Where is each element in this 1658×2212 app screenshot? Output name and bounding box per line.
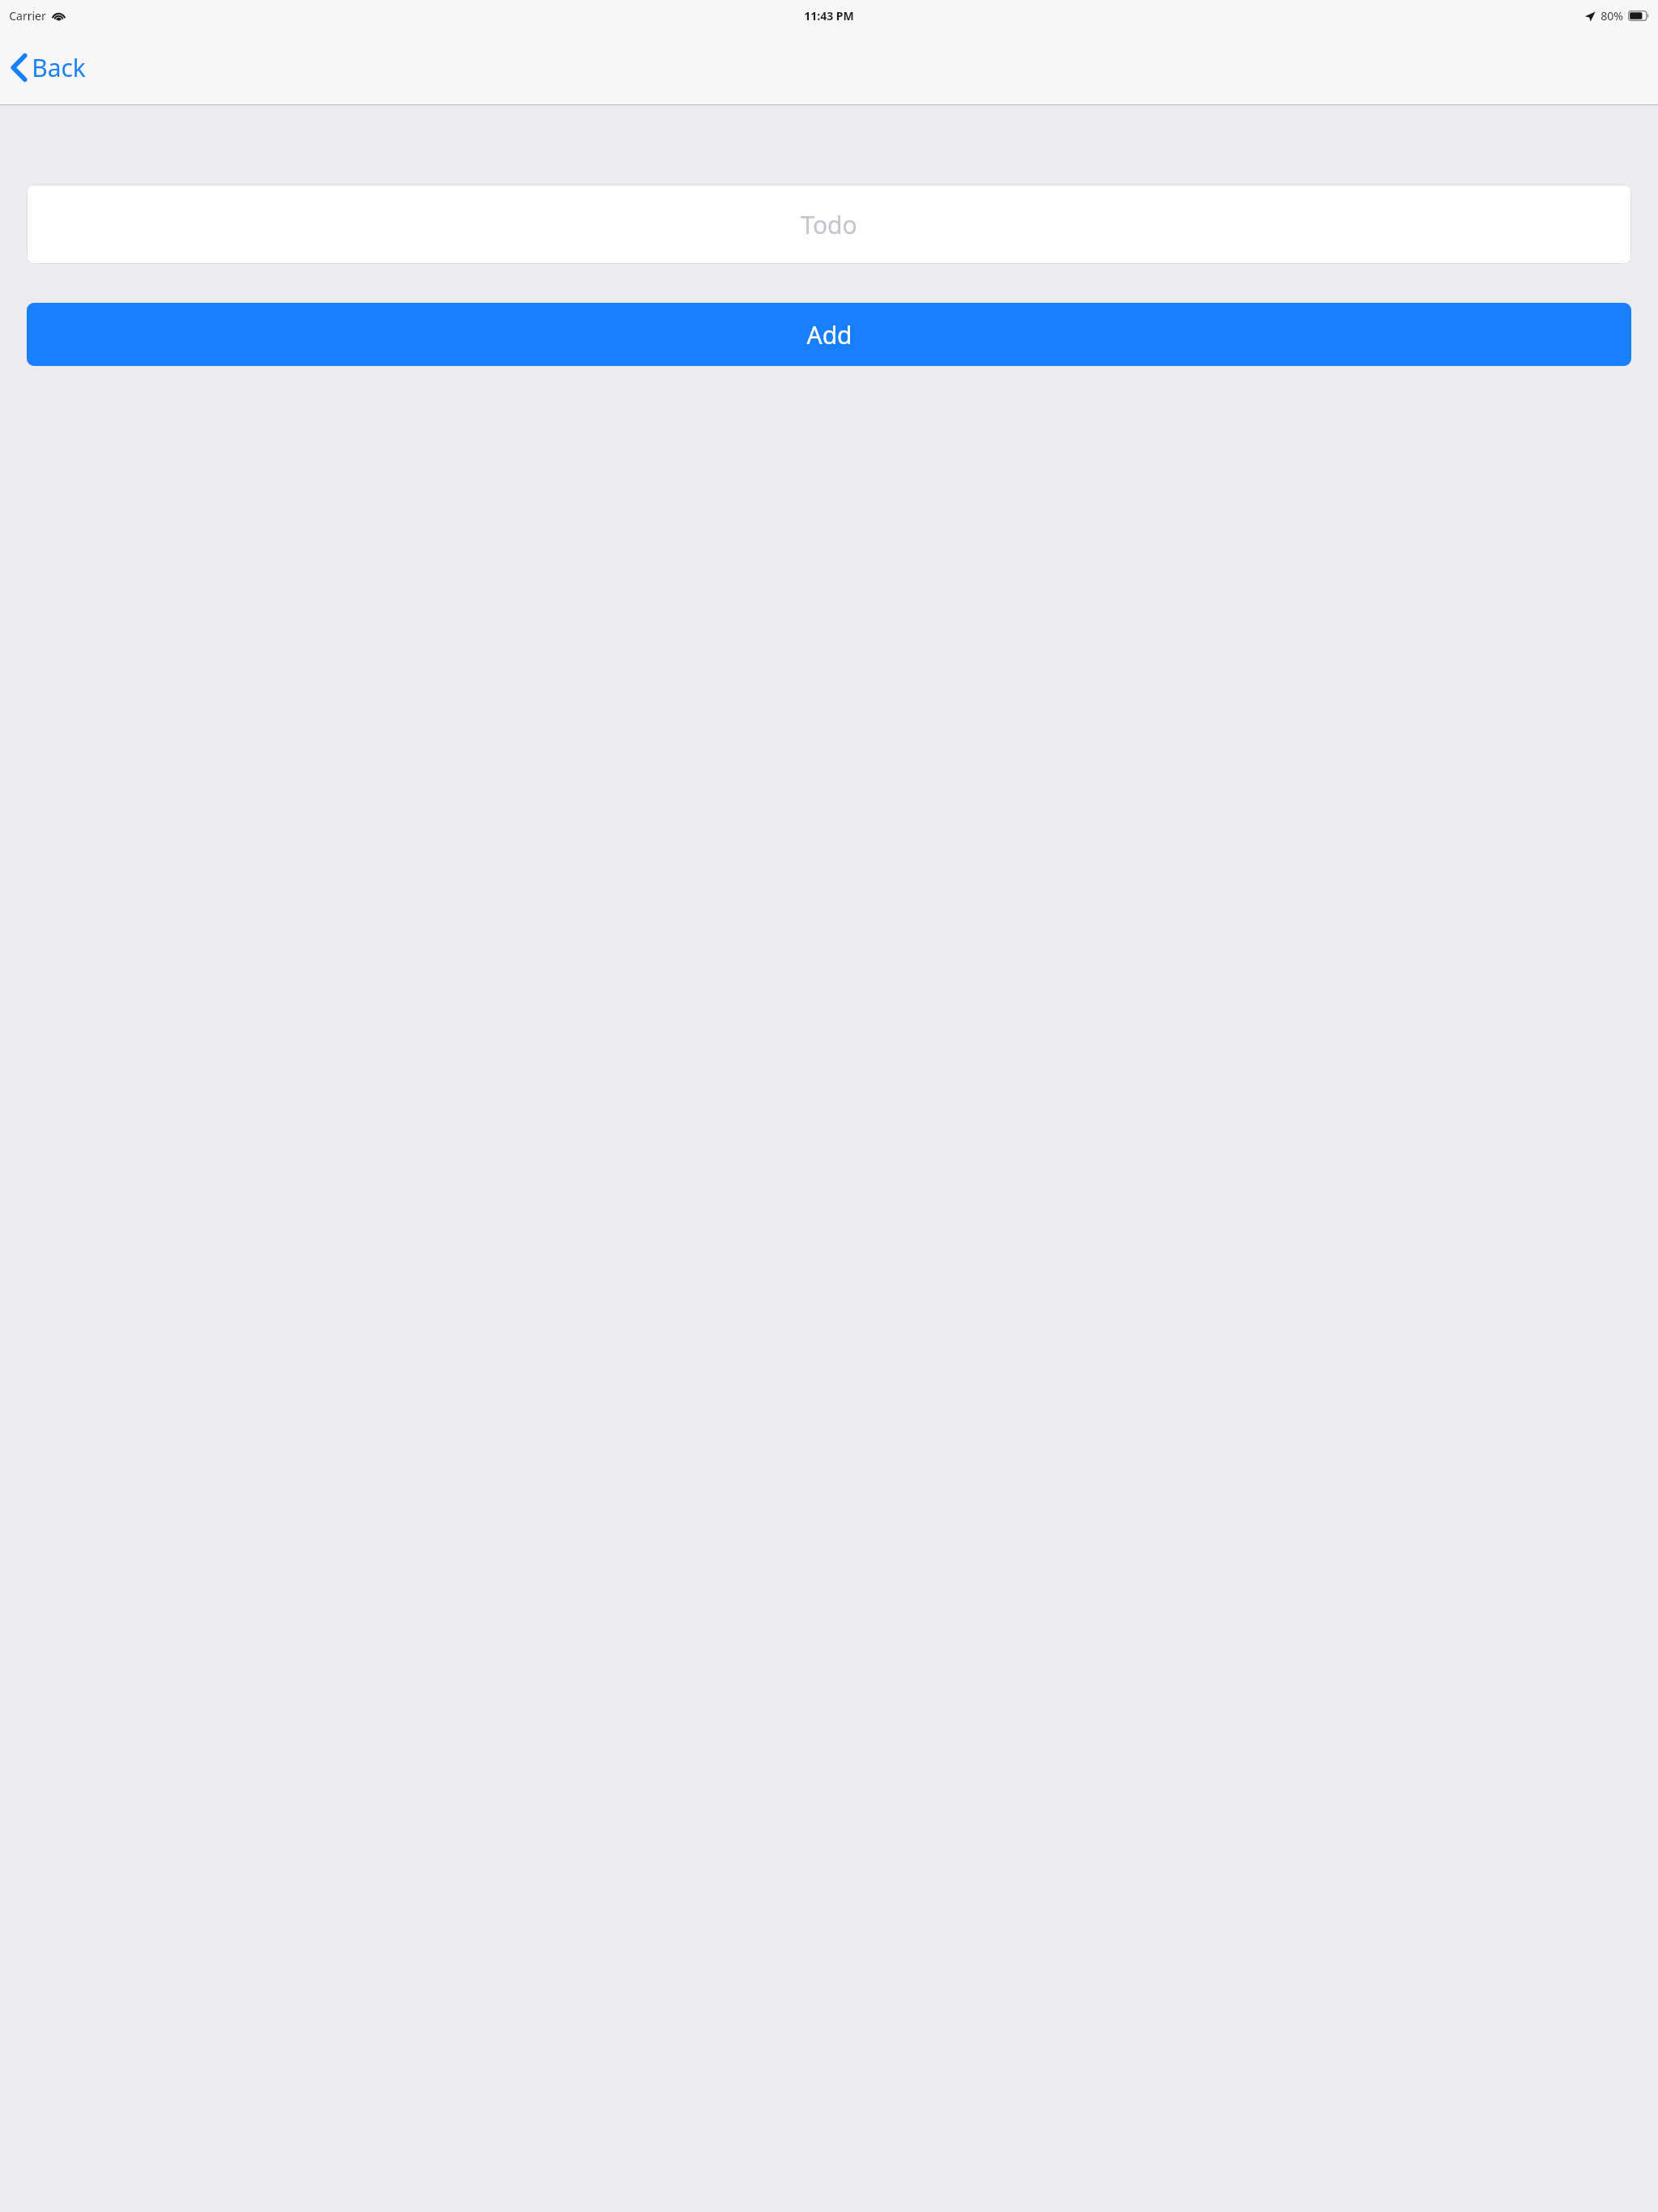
staticText: Add xyxy=(806,318,852,351)
button[interactable]: Todo xyxy=(27,185,1631,264)
button[interactable]: Add todo xyxy=(27,303,1631,366)
button[interactable]: Back xyxy=(0,45,97,91)
staticText: 80% xyxy=(1601,8,1623,23)
staticText: Carrier xyxy=(9,8,46,23)
staticText: Back xyxy=(32,51,86,84)
staticText: 11:43 PM xyxy=(804,8,854,23)
staticText: Todo xyxy=(801,208,857,241)
